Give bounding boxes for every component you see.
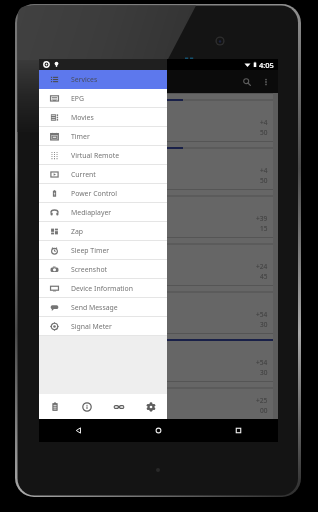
button[interactable]: Power Control <box>39 184 167 203</box>
staticText: Screenshot <box>71 265 108 274</box>
staticText: Device Information <box>71 284 134 293</box>
button[interactable]: Virtual Remote <box>39 146 167 165</box>
button[interactable]: Send Message <box>39 298 167 317</box>
staticText: +54 <box>256 310 268 319</box>
button[interactable]: Sleep Timer <box>39 241 167 260</box>
button[interactable]: Back <box>39 419 118 442</box>
button[interactable]: Home <box>118 419 198 442</box>
button[interactable]: Current <box>39 165 167 184</box>
staticText: Zap <box>71 227 84 236</box>
button[interactable]: More options <box>257 73 275 91</box>
button[interactable]: Mediaplayer <box>39 203 167 222</box>
button[interactable]: EPG <box>39 89 167 108</box>
staticText: Timer <box>71 132 90 141</box>
staticText: Mediaplayer <box>71 208 112 217</box>
staticText: 45 <box>260 272 268 281</box>
staticText: Send Message <box>71 303 118 312</box>
button[interactable]: Recents <box>198 419 278 442</box>
staticText: 15 <box>260 224 268 233</box>
staticText: Movies <box>71 113 94 122</box>
button[interactable]: Timer <box>39 127 167 146</box>
staticText: +24 <box>256 262 268 271</box>
staticText: Power Control <box>71 189 118 198</box>
staticText: EPG <box>71 94 85 103</box>
button[interactable]: Device Information <box>39 279 167 298</box>
staticText: Sleep Timer <box>71 246 110 255</box>
button[interactable]: Connections <box>103 394 135 419</box>
staticText: 30 <box>260 368 268 377</box>
staticText: Virtual Remote <box>71 151 120 160</box>
button[interactable]: Movies <box>39 108 167 127</box>
button[interactable]: Settings <box>135 394 167 419</box>
staticText: +54 <box>256 358 268 367</box>
button[interactable]: Tasks <box>39 394 71 419</box>
staticText: Signal Meter <box>71 322 112 331</box>
button[interactable]: Search <box>238 73 256 91</box>
staticText: 4:05 <box>259 60 274 70</box>
button[interactable]: Info <box>71 394 103 419</box>
button[interactable]: Zap <box>39 222 167 241</box>
staticText: Services <box>71 75 98 84</box>
staticText: 50 <box>260 176 268 185</box>
staticText: +4 <box>260 166 268 175</box>
button[interactable]: Signal Meter <box>39 317 167 336</box>
staticText: +25 <box>256 396 268 405</box>
staticText: 30 <box>260 320 268 329</box>
staticText: Current <box>71 170 96 179</box>
button[interactable]: Screenshot <box>39 260 167 279</box>
staticText: +39 <box>256 214 268 223</box>
staticText: 50 <box>260 128 268 137</box>
staticText: 00 <box>260 406 268 415</box>
button[interactable]: Services <box>39 70 167 89</box>
staticText: +4 <box>260 118 268 127</box>
